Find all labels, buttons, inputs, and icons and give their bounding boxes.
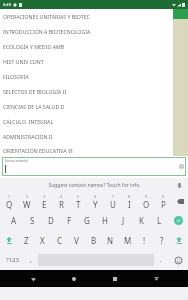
- staticText: .: [160, 255, 162, 265]
- button[interactable]: Z: [18, 230, 34, 250]
- button[interactable]: SELECTOS DE BIOLOGÍA II: [0, 84, 188, 99]
- button[interactable]: Enter: [168, 211, 188, 230]
- button[interactable]: Home: [67, 272, 81, 286]
- button[interactable]: FILOSOFÍA: [0, 69, 188, 84]
- button[interactable]: A: [4, 211, 23, 230]
- button[interactable]: 5: [70, 192, 87, 211]
- staticText: 1: [8, 194, 11, 199]
- button[interactable]: V: [68, 230, 85, 250]
- staticText: ?123: [6, 256, 19, 264]
- button[interactable]: 9: [138, 192, 155, 211]
- button[interactable]: M: [119, 230, 136, 250]
- staticText: P: [161, 199, 166, 210]
- staticText: Z: [24, 235, 29, 246]
- staticText: K: [139, 215, 144, 226]
- staticText: CÁLCULO INTEGRAL: [3, 118, 54, 125]
- staticText: R: [59, 199, 64, 210]
- staticText: 5: [77, 194, 80, 199]
- staticText: Y: [93, 199, 98, 210]
- button[interactable]: 3: [36, 192, 53, 211]
- staticText: C: [57, 235, 63, 246]
- button[interactable]: Voice input: [175, 181, 184, 190]
- staticText: X: [40, 235, 45, 246]
- staticText: ORIENTACIÓN EDUCATIVA VI: [3, 147, 73, 154]
- staticText: 6: [94, 194, 97, 199]
- staticText: A: [11, 215, 17, 226]
- staticText: 2: [26, 194, 29, 199]
- staticText: H: [102, 215, 108, 226]
- button[interactable]: K: [132, 211, 150, 230]
- button[interactable]: 6: [87, 192, 104, 211]
- staticText: !: [143, 235, 146, 246]
- button[interactable]: ECOLOGÍA Y MEDIO AMB: [0, 39, 188, 54]
- staticText: Suggest contact names? Touch for info.: [48, 182, 141, 189]
- button[interactable]: ?123: [0, 250, 24, 270]
- staticText: ,: [30, 255, 32, 265]
- staticText: 3: [43, 194, 46, 199]
- button[interactable]: 0: [155, 192, 172, 211]
- staticText: L: [157, 215, 162, 226]
- staticText: OPERACIONES UNITARIAS Y BIOTEC: [3, 13, 90, 20]
- staticText: INTRODUCCIÓN A BIOTECNOLOGÍA: [3, 28, 91, 35]
- staticText: J: [122, 215, 125, 226]
- button[interactable]: CÁLCULO INTEGRAL: [0, 114, 188, 129]
- button[interactable]: Shift: [0, 230, 18, 250]
- button[interactable]: N: [102, 230, 119, 250]
- button[interactable]: J: [114, 211, 132, 230]
- staticText: 8: [128, 194, 131, 199]
- staticText: ?: [160, 235, 164, 246]
- button[interactable]: L: [150, 211, 168, 230]
- button[interactable]: 8: [121, 192, 138, 211]
- staticText: O: [143, 199, 150, 210]
- staticText: CIENCIAS DE LA SALUD II: [3, 103, 65, 110]
- staticText: B: [91, 235, 97, 246]
- staticText: F: [67, 215, 72, 226]
- button[interactable]: .: [154, 250, 168, 270]
- button[interactable]: H: [96, 211, 114, 230]
- button[interactable]: D: [42, 211, 60, 230]
- button[interactable]: OPERACIONES UNITARIAS Y BIOTEC: [0, 9, 188, 24]
- button[interactable]: HIST UNIV CONT: [0, 54, 188, 69]
- button[interactable]: Shift: [170, 230, 188, 250]
- button[interactable]: 1: [0, 192, 18, 211]
- button[interactable]: Emoji: [168, 250, 188, 270]
- button[interactable]: Back: [26, 272, 40, 286]
- button[interactable]: 2: [18, 192, 36, 211]
- button[interactable]: !: [136, 230, 153, 250]
- staticText: U: [110, 199, 116, 210]
- other: Clear: [180, 165, 183, 168]
- staticText: W: [23, 199, 31, 210]
- button[interactable]: G: [78, 211, 96, 230]
- button[interactable]: X: [34, 230, 51, 250]
- button[interactable]: ORIENTACIÓN EDUCATIVA VI: [0, 144, 188, 156]
- staticText: 4: [60, 194, 63, 199]
- staticText: I: [128, 199, 131, 210]
- button[interactable]: CIENCIAS DE LA SALUD II: [0, 99, 188, 114]
- staticText: M: [124, 235, 132, 246]
- button[interactable]: Recent apps: [108, 272, 122, 286]
- staticText: ADMINISTRACIÓN II: [3, 133, 53, 140]
- button[interactable]: S: [23, 211, 42, 230]
- staticText: 9: [145, 194, 148, 199]
- button[interactable]: C: [51, 230, 68, 250]
- button[interactable]: ,: [24, 250, 38, 270]
- button[interactable]: Backspace: [172, 192, 188, 211]
- staticText: T: [76, 199, 81, 210]
- button[interactable]: 4: [53, 192, 70, 211]
- button[interactable]: Buscar materia: [2, 157, 186, 176]
- staticText: 6:49: [3, 2, 11, 7]
- button[interactable]: INTRODUCCIÓN A BIOTECNOLOGÍA: [0, 24, 188, 39]
- staticText: N: [107, 235, 114, 246]
- button[interactable]: Hide keyboard: [149, 272, 163, 286]
- button[interactable]: B: [85, 230, 102, 250]
- staticText: V: [74, 235, 79, 246]
- staticText: ECOLOGÍA Y MEDIO AMB: [3, 43, 65, 50]
- staticText: 7: [112, 194, 115, 199]
- button[interactable]: ADMINISTRACIÓN II: [0, 129, 188, 144]
- button[interactable]: ?: [153, 230, 170, 250]
- button[interactable]: 7: [104, 192, 121, 211]
- staticText: FILOSOFÍA: [3, 73, 29, 80]
- button[interactable]: F: [60, 211, 78, 230]
- staticText: E: [42, 199, 47, 210]
